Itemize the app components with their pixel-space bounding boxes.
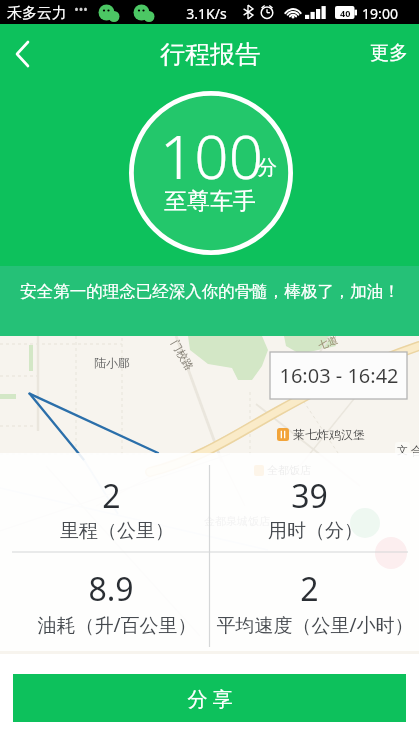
button[interactable]: 39 <box>209 453 419 553</box>
button[interactable]: 2 <box>209 546 419 646</box>
staticText: 全都饭店 <box>267 463 311 477</box>
button[interactable]: 更多 <box>354 31 419 75</box>
staticText: 8.9 <box>88 567 134 611</box>
staticText: 金都泉城饭店 <box>204 514 270 528</box>
staticText: 七道 <box>316 333 340 352</box>
staticText: 分 享 <box>187 685 233 712</box>
staticText: 分 <box>257 155 277 180</box>
staticText: 平均速度（公里/小时） <box>216 612 414 638</box>
staticText: 安全第一的理念已经深入你的骨髓，棒极了，加油！ <box>20 281 400 302</box>
staticText: 19:00 <box>362 4 398 23</box>
button[interactable]: Back <box>0 27 45 81</box>
staticText: 39 <box>291 474 328 518</box>
staticText: 更多 <box>370 41 408 65</box>
staticText: 40 <box>340 7 351 19</box>
staticText: 油耗（升/百公里） <box>37 612 197 638</box>
staticText: 禾多云力 <box>7 4 67 23</box>
staticText: 2 <box>300 567 319 611</box>
staticText: 莱七炸鸡汉堡 <box>293 427 365 442</box>
button[interactable]: 2 <box>0 453 210 553</box>
staticText: 陆小郿 <box>94 355 130 370</box>
staticText: 100 <box>160 115 263 197</box>
staticText: 门校路 <box>168 337 197 373</box>
staticText: 里程（公里） <box>60 519 174 543</box>
button[interactable]: 分 享 <box>13 674 406 722</box>
staticText: 合 <box>411 443 419 458</box>
staticText: 用时（分） <box>268 519 363 543</box>
button[interactable]: 8.9 <box>0 546 210 646</box>
staticText: 16:03 - 16:42 <box>279 362 399 389</box>
staticText: 2 <box>102 474 121 518</box>
staticText: 3.1K/s <box>186 4 227 23</box>
staticText: ••• <box>74 1 88 17</box>
staticText: 行程报告 <box>160 39 260 70</box>
staticText: 文 <box>397 443 408 457</box>
staticText: 至尊车手 <box>164 187 256 216</box>
